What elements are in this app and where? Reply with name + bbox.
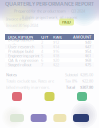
staticText: QTY (41, 34, 48, 40)
button[interactable]: Spend (73, 114, 89, 122)
staticText: QA & regression (8, 58, 38, 63)
staticText: Totals exclude tax. Rates are (6, 78, 54, 84)
staticText: $18 (53, 53, 59, 58)
staticText: Issued 30 Sep 2024 (6, 22, 38, 28)
staticText: 7 (41, 62, 43, 67)
staticText: $75 (85, 62, 91, 67)
staticText: $40 (85, 40, 91, 45)
staticText: Design system audit (8, 37, 34, 47)
button[interactable]: Sales (12, 92, 22, 101)
staticText: $47 (85, 44, 91, 49)
button[interactable]: Reach (44, 92, 54, 101)
staticText: AMOUNT (73, 34, 91, 40)
staticText: PAID (62, 19, 71, 25)
staticText: $14 (53, 44, 59, 49)
staticText: Prepared for the product team · Q3 2024 (14, 8, 85, 13)
staticText: Engineering sprint (8, 53, 39, 58)
staticText: 4 (41, 49, 43, 54)
staticText: Notes (6, 72, 17, 77)
staticText: $54 (85, 49, 91, 54)
staticText: RATE (53, 34, 62, 40)
staticText: 2 (41, 40, 43, 45)
staticText: billed monthly in arrears. (6, 85, 50, 90)
staticText: Prototype build (8, 49, 33, 54)
button[interactable]: PAID (59, 18, 74, 25)
staticText: Invoice #2481 (6, 16, 30, 21)
staticText: 6 (41, 58, 43, 63)
staticText: 5 (41, 53, 43, 58)
staticText: Staged rollout (8, 62, 31, 67)
staticText: Total $307.80 (66, 85, 93, 90)
staticText: Subtotal $285.00 (65, 72, 93, 77)
button[interactable]: Churn (77, 92, 87, 101)
staticText: $22 (53, 62, 59, 67)
staticText: $16 (53, 49, 59, 54)
button[interactable]: Leads (10, 114, 24, 122)
staticText: $61 (85, 53, 91, 58)
staticText: 3 (41, 44, 43, 49)
button[interactable]: Time (53, 114, 66, 122)
button[interactable]: Visits (31, 114, 47, 122)
staticText: $12 (53, 40, 59, 45)
staticText: $68 (85, 58, 91, 63)
staticText: QUARTERLY PERFORMANCE REPORT (5, 0, 94, 7)
staticText: Tax 8% $22.80 (65, 78, 93, 84)
staticText: DESCRIPTION (8, 34, 33, 40)
staticText: User research (8, 44, 34, 49)
staticText: Billable project work, all regions (21, 14, 77, 20)
staticText: $20 (53, 58, 59, 63)
